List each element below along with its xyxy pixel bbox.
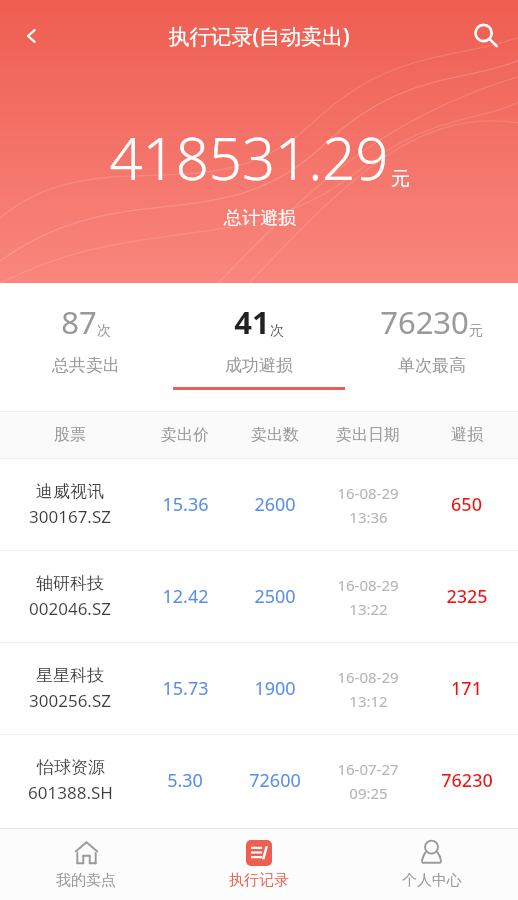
button[interactable]: Search <box>462 12 510 60</box>
staticText: 卖出数 <box>251 425 299 445</box>
staticText: 5.30 <box>167 768 203 793</box>
staticText: 16-07-27 <box>337 759 399 779</box>
staticText: 执行记录(自动卖出) <box>168 22 350 51</box>
staticText: 股票 <box>54 425 86 445</box>
staticText: 总计避损 <box>224 207 296 230</box>
staticText: 16-08-29 <box>337 575 399 595</box>
staticText: 87 <box>61 301 97 343</box>
staticText: 星星科技 <box>36 665 104 686</box>
staticText: 72600 <box>249 768 301 793</box>
staticText: 我的卖点 <box>56 871 116 890</box>
staticText: 16-08-29 <box>337 667 399 687</box>
button[interactable]: 41 <box>172 301 345 390</box>
staticText: 轴研科技 <box>36 573 104 594</box>
button[interactable]: 轴研科技 <box>0 551 518 642</box>
staticText: 总共卖出 <box>52 355 120 376</box>
staticText: 09:25 <box>349 783 388 803</box>
staticText: 1900 <box>254 676 296 701</box>
button[interactable]: 我的卖点 <box>0 829 172 900</box>
staticText: 次 <box>270 322 284 340</box>
staticText: 300167.SZ <box>29 505 111 528</box>
button[interactable]: 执行记录 <box>172 829 345 900</box>
staticText: 怡球资源 <box>37 757 105 778</box>
staticText: 避损 <box>451 425 483 445</box>
button[interactable]: 迪威视讯 <box>0 459 518 550</box>
staticText: 15.36 <box>162 492 209 517</box>
staticText: 个人中心 <box>402 871 462 890</box>
staticText: 15.73 <box>162 676 209 701</box>
button[interactable]: Back <box>8 12 56 60</box>
staticText: 171 <box>451 676 482 701</box>
staticText: 76230 <box>380 301 469 343</box>
staticText: 13:36 <box>349 507 388 527</box>
staticText: 2500 <box>254 584 296 609</box>
staticText: 418531.29 <box>109 118 389 197</box>
staticText: 元 <box>469 322 483 340</box>
staticText: 16-08-29 <box>337 483 399 503</box>
button[interactable]: 76230 <box>345 301 518 390</box>
staticText: 601388.SH <box>28 781 113 804</box>
staticText: 2325 <box>446 584 488 609</box>
staticText: 41 <box>234 301 270 343</box>
staticText: 2600 <box>254 492 296 517</box>
button[interactable]: 星星科技 <box>0 643 518 734</box>
staticText: 成功避损 <box>225 355 293 376</box>
staticText: 执行记录 <box>229 871 289 890</box>
staticText: 13:12 <box>349 691 388 711</box>
staticText: 元 <box>391 167 410 191</box>
button[interactable]: 怡球资源 <box>0 735 518 826</box>
staticText: 13:22 <box>349 599 388 619</box>
staticText: 12.42 <box>162 584 209 609</box>
button[interactable]: 个人中心 <box>345 829 518 900</box>
staticText: 300256.SZ <box>29 689 111 712</box>
button[interactable]: 87 <box>0 301 172 390</box>
staticText: 卖出日期 <box>336 425 400 445</box>
staticText: 卖出价 <box>161 425 209 445</box>
staticText: 650 <box>451 492 482 517</box>
staticText: 76230 <box>441 768 493 793</box>
staticText: 单次最高 <box>398 355 466 376</box>
staticText: 迪威视讯 <box>36 481 104 502</box>
staticText: 次 <box>97 322 111 340</box>
staticText: 002046.SZ <box>29 597 111 620</box>
